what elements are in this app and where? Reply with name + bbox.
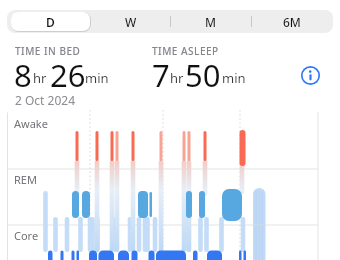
staticText: 2 Oct 2024 [15, 92, 76, 108]
staticText: REM [14, 172, 37, 187]
staticText: TIME IN BED [15, 44, 81, 58]
staticText: M [205, 14, 217, 30]
staticText: 8 [14, 54, 32, 96]
staticText: 7 [152, 54, 170, 96]
staticText: Awake [14, 116, 48, 131]
staticText: min [85, 69, 109, 87]
staticText: W [125, 14, 137, 30]
staticText: 50 [185, 54, 221, 96]
staticText: D [46, 14, 55, 30]
staticText: TIME ASLEEP [152, 44, 219, 58]
staticText: min [222, 69, 246, 87]
staticText: hr [33, 69, 47, 87]
staticText: 26 [50, 54, 86, 96]
staticText: Core [14, 228, 39, 243]
staticText: hr [170, 69, 184, 87]
staticText: 6M [283, 14, 301, 30]
